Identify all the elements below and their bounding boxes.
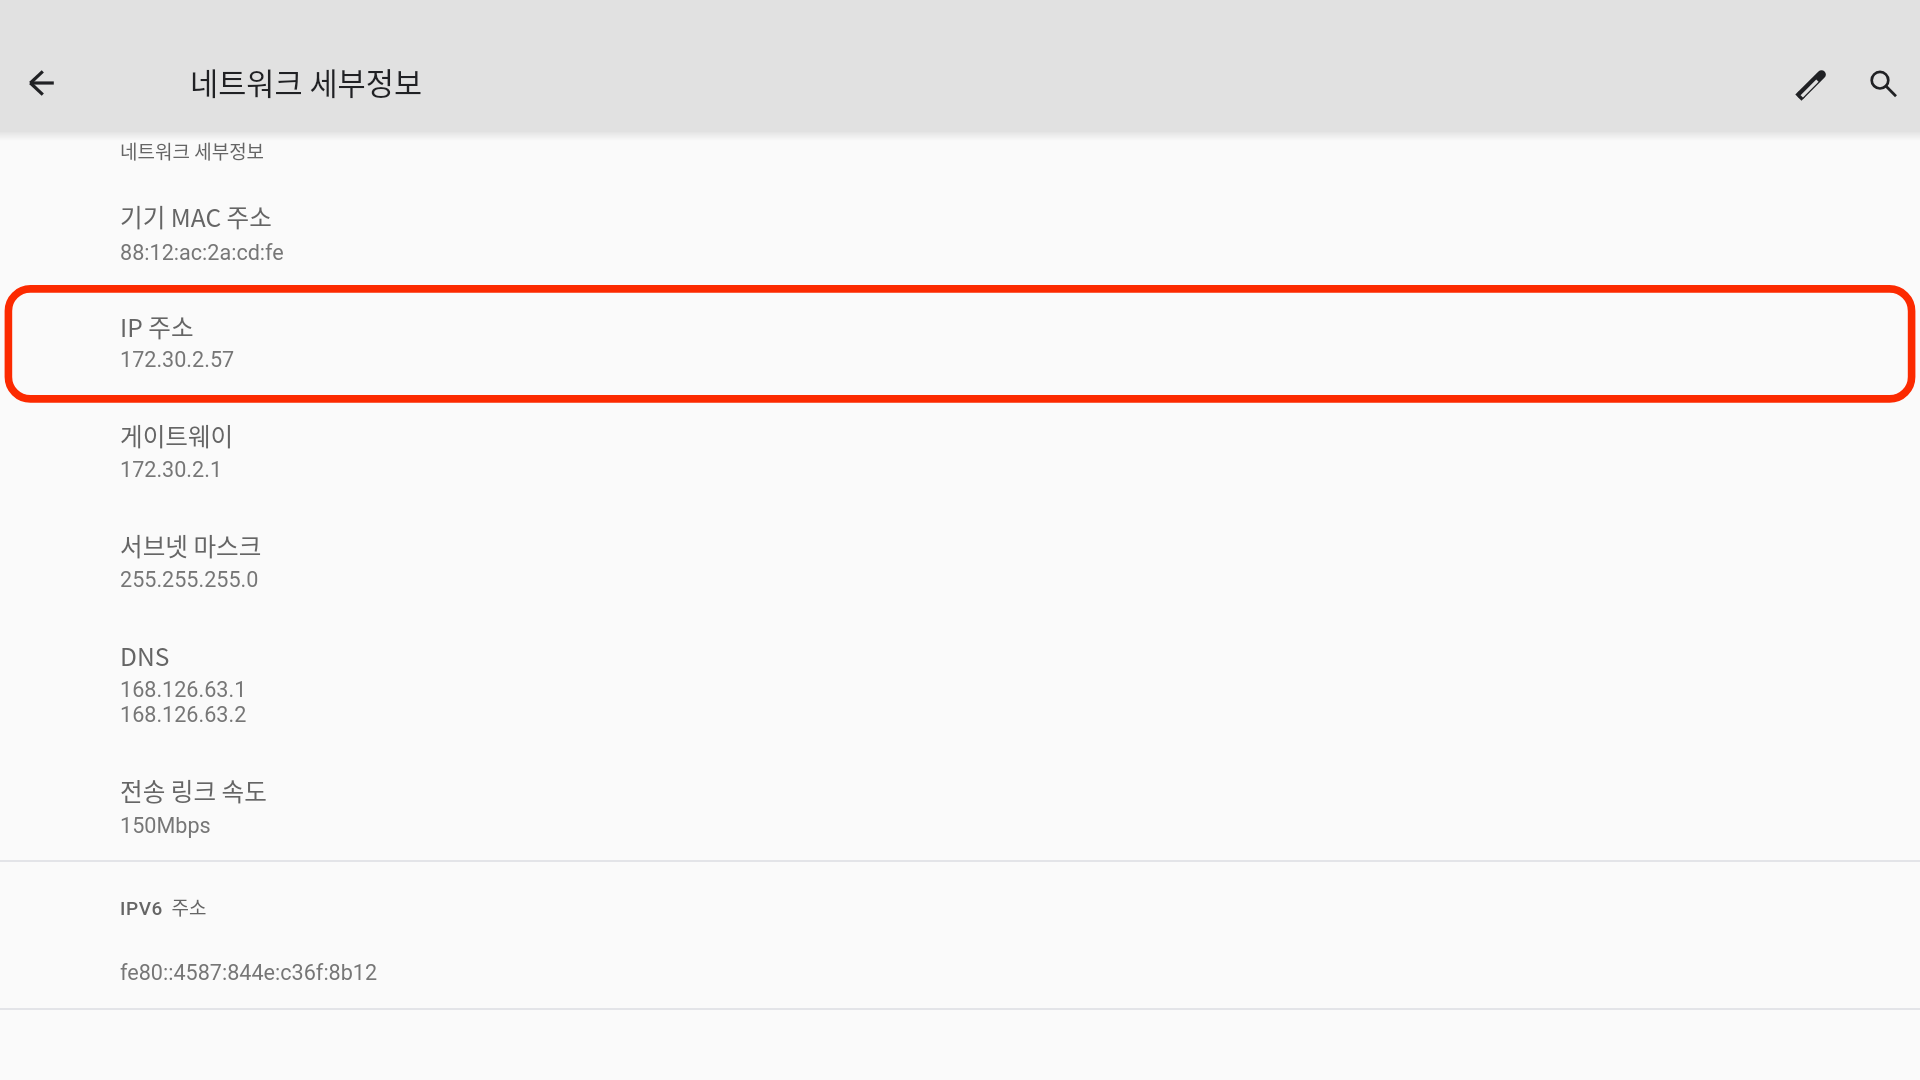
staticText: 서브넷 마스크 xyxy=(120,527,262,563)
button[interactable] xyxy=(0,180,1920,283)
staticText: 네트워크 세부정보 xyxy=(190,60,423,104)
staticText: 255.255.255.0 xyxy=(120,567,259,592)
staticText: 네트워크 세부정보 xyxy=(120,137,265,165)
staticText: 게이트웨이 xyxy=(120,417,234,453)
staticText: DNS xyxy=(120,637,170,673)
button[interactable] xyxy=(0,400,1920,500)
button[interactable] xyxy=(0,754,1920,856)
staticText: 전송 링크 속도 xyxy=(120,772,267,808)
staticText: IP 주소 xyxy=(120,308,194,344)
staticText: 168.126.63.2 xyxy=(120,702,247,727)
staticText: 88:12:ac:2a:cd:fe xyxy=(120,240,284,265)
staticText: 168.126.63.1 xyxy=(120,677,247,702)
button[interactable]: Edit xyxy=(1756,0,1868,132)
button[interactable] xyxy=(0,862,1920,1008)
staticText: IPV6 주소 xyxy=(120,893,207,921)
button[interactable] xyxy=(0,290,1920,390)
button[interactable] xyxy=(0,510,1920,610)
staticText: 150Mbps xyxy=(120,813,211,838)
staticText: 기기 MAC 주소 xyxy=(120,198,272,234)
button[interactable]: Back xyxy=(0,0,84,132)
button[interactable]: Search xyxy=(1844,0,1920,132)
button[interactable] xyxy=(0,619,1920,744)
staticText: 172.30.2.1 xyxy=(120,457,223,482)
staticText: fe80::4587:844e:c36f:8b12 xyxy=(120,960,378,985)
staticText: 172.30.2.57 xyxy=(120,347,235,372)
